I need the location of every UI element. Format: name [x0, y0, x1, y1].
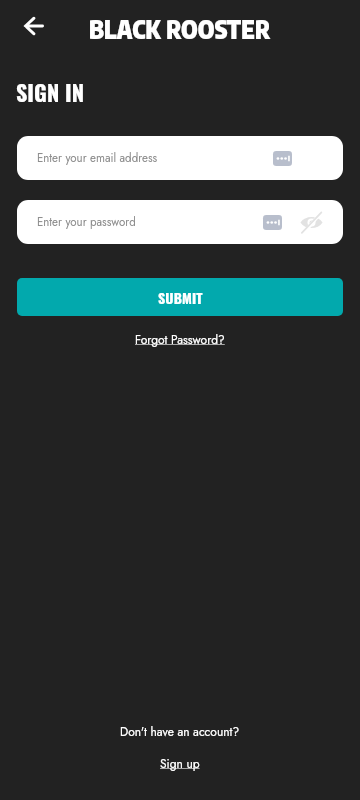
button[interactable]: Enter your password	[17, 200, 343, 244]
staticText: Enter your email address	[37, 150, 158, 167]
button[interactable]: Back	[12, 4, 56, 48]
button[interactable]: Enter your email address	[17, 136, 343, 180]
button[interactable]: Sign up	[154, 753, 206, 774]
staticText: SUBMIT	[158, 287, 203, 308]
staticText: BLACK ROOSTER	[89, 14, 271, 44]
button[interactable]: Show password	[299, 210, 323, 234]
staticText: Don't have an account?	[120, 723, 240, 740]
button[interactable]: Forgot Password?	[129, 329, 231, 350]
staticText: SIGN IN	[16, 76, 85, 109]
staticText: Enter your password	[37, 214, 136, 231]
button[interactable]: Autofill	[261, 211, 283, 233]
button[interactable]: SUBMIT	[17, 278, 343, 316]
button[interactable]: Autofill	[271, 147, 293, 169]
